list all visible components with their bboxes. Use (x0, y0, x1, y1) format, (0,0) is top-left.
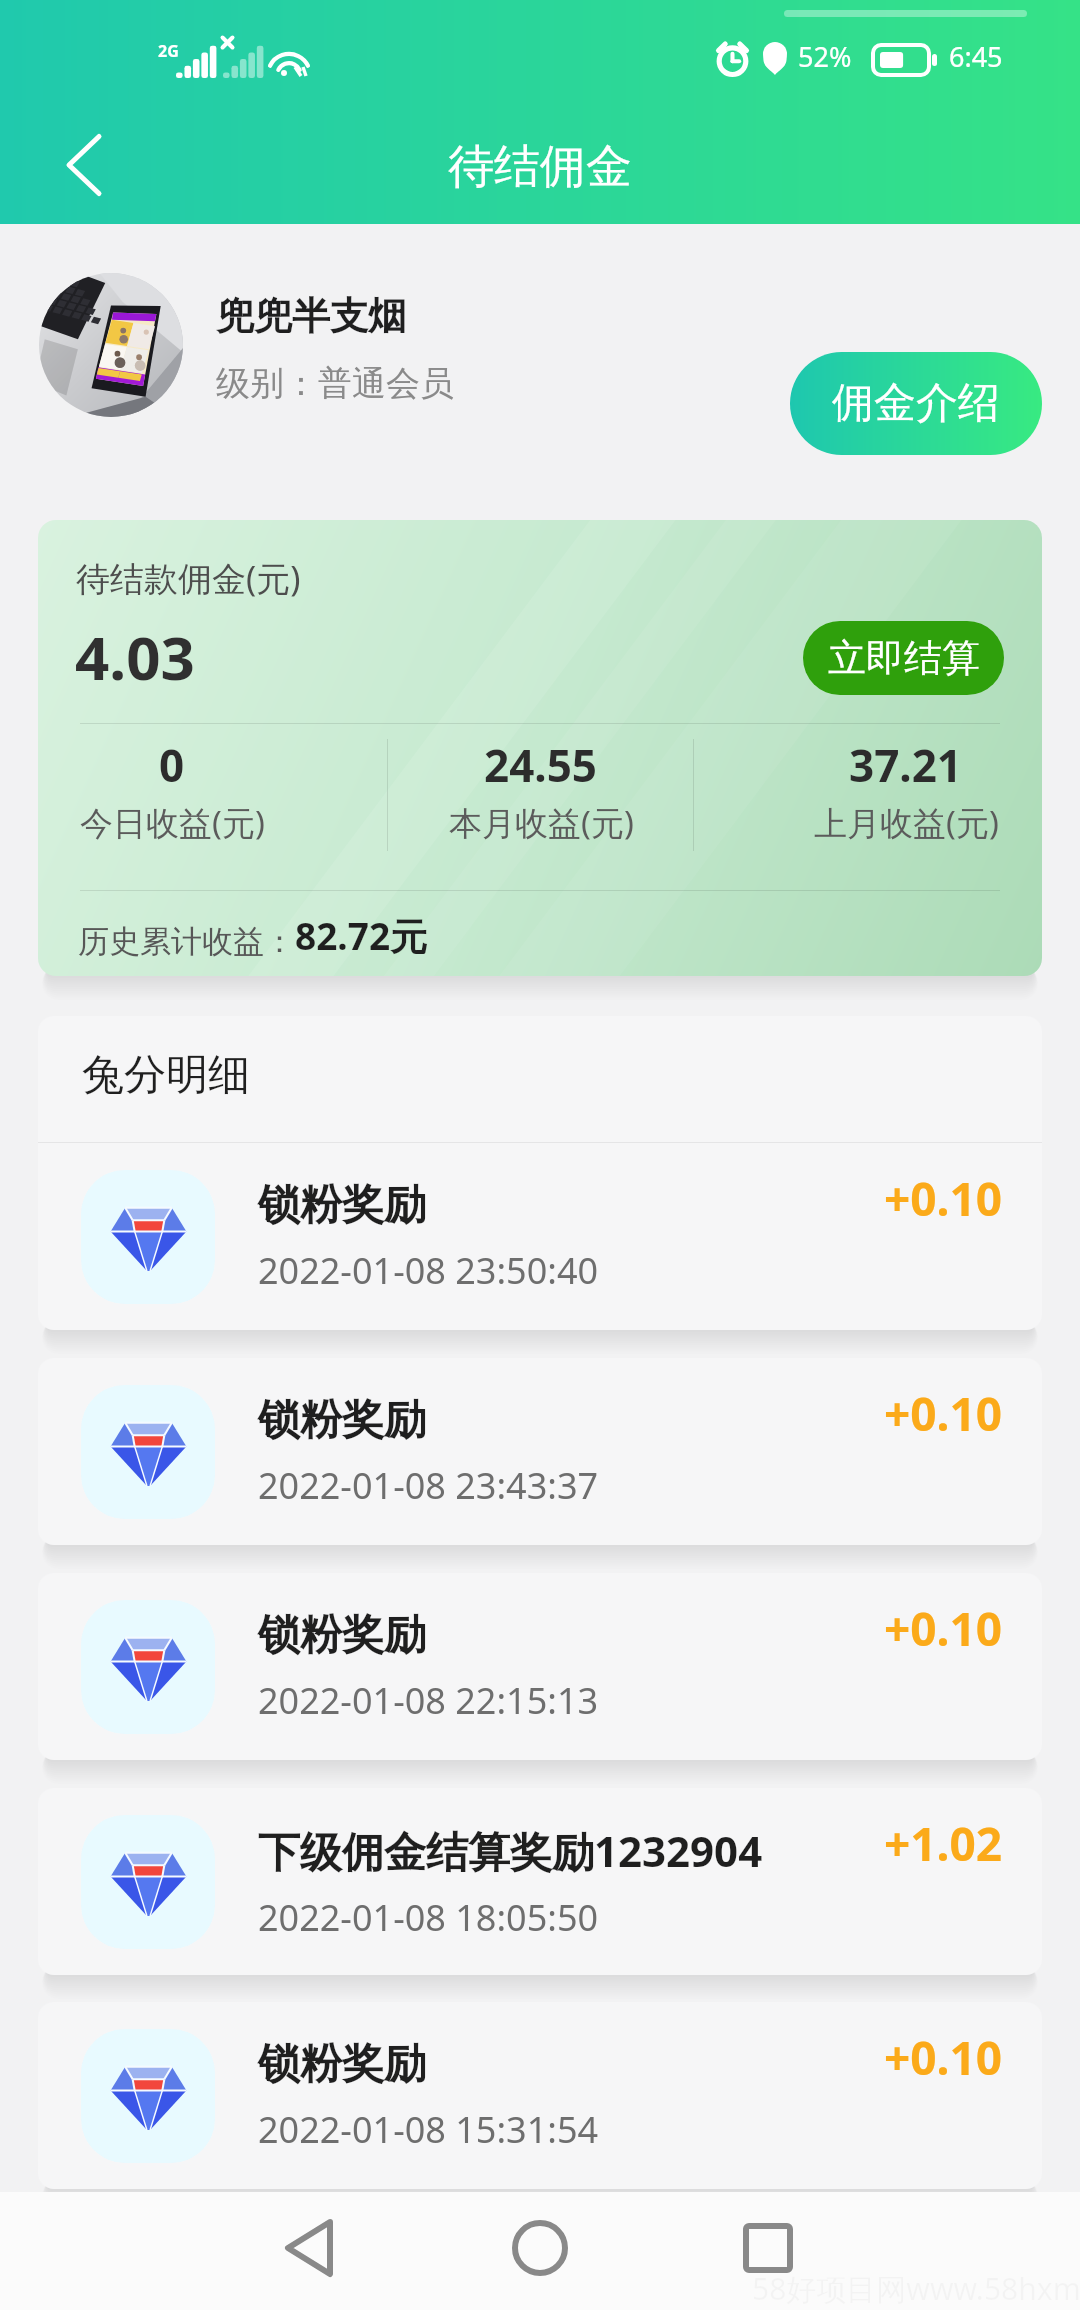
staticText: +0.10 (884, 1167, 1003, 1230)
staticText: 24.55 (484, 735, 598, 795)
button[interactable]: Recents (718, 2198, 818, 2298)
staticText: 本月收益(元) (449, 800, 634, 845)
staticText: 58好项目网www.58hxm.com (752, 2268, 1080, 2309)
staticText: 2022-01-08 22:15:13 (258, 1676, 599, 1725)
staticText: +0.10 (884, 2026, 1003, 2089)
staticText: 锁粉奖励 (258, 2038, 426, 2091)
button[interactable]: 立即结算 (803, 621, 1004, 695)
staticText: 0 (159, 735, 185, 795)
staticText: 6:45 (949, 38, 1003, 75)
staticText: +0.10 (884, 1597, 1003, 1660)
staticText: +1.02 (884, 1812, 1003, 1875)
button[interactable]: Back (260, 2198, 360, 2298)
staticText: 兔分明细 (82, 1049, 250, 1102)
staticText: 上月收益(元) (814, 800, 999, 845)
staticText: 2G (158, 40, 179, 62)
button[interactable]: 锁粉奖励 (38, 1358, 1042, 1545)
button[interactable]: 锁粉奖励 (38, 1573, 1042, 1760)
button[interactable]: 佣金介绍 (790, 352, 1042, 455)
staticText: 待结佣金 (448, 138, 632, 196)
staticText: 佣金介绍 (832, 377, 1000, 430)
staticText: 2022-01-08 23:50:40 (258, 1246, 599, 1295)
button[interactable]: Back (38, 119, 130, 211)
staticText: 4.03 (75, 616, 195, 698)
staticText: 2022-01-08 18:05:50 (258, 1893, 599, 1942)
staticText: 锁粉奖励 (258, 1609, 426, 1662)
button[interactable]: 锁粉奖励 (38, 2002, 1042, 2189)
staticText: 37.21 (849, 735, 963, 795)
button[interactable]: 下级佣金结算奖励1232904 (38, 1788, 1042, 1975)
staticText: 2022-01-08 23:43:37 (258, 1461, 599, 1510)
staticText: 82.72元 (295, 910, 428, 961)
button[interactable]: Home (490, 2198, 590, 2298)
staticText: 锁粉奖励 (258, 1179, 426, 1232)
staticText: 历史累计收益： (78, 922, 295, 961)
staticText: 锁粉奖励 (258, 1394, 426, 1447)
staticText: 52% (798, 38, 852, 75)
staticText: 2022-01-08 15:31:54 (258, 2105, 599, 2154)
staticText: 兜兜半支烟 (216, 292, 406, 340)
staticText: 待结款佣金(元) (76, 555, 301, 601)
staticText: 立即结算 (828, 634, 980, 682)
staticText: 今日收益(元) (80, 800, 265, 845)
staticText: 下级佣金结算奖励1232904 (258, 1822, 763, 1879)
staticText: +0.10 (884, 1382, 1003, 1445)
staticText: 级别：普通会员 (216, 362, 454, 405)
